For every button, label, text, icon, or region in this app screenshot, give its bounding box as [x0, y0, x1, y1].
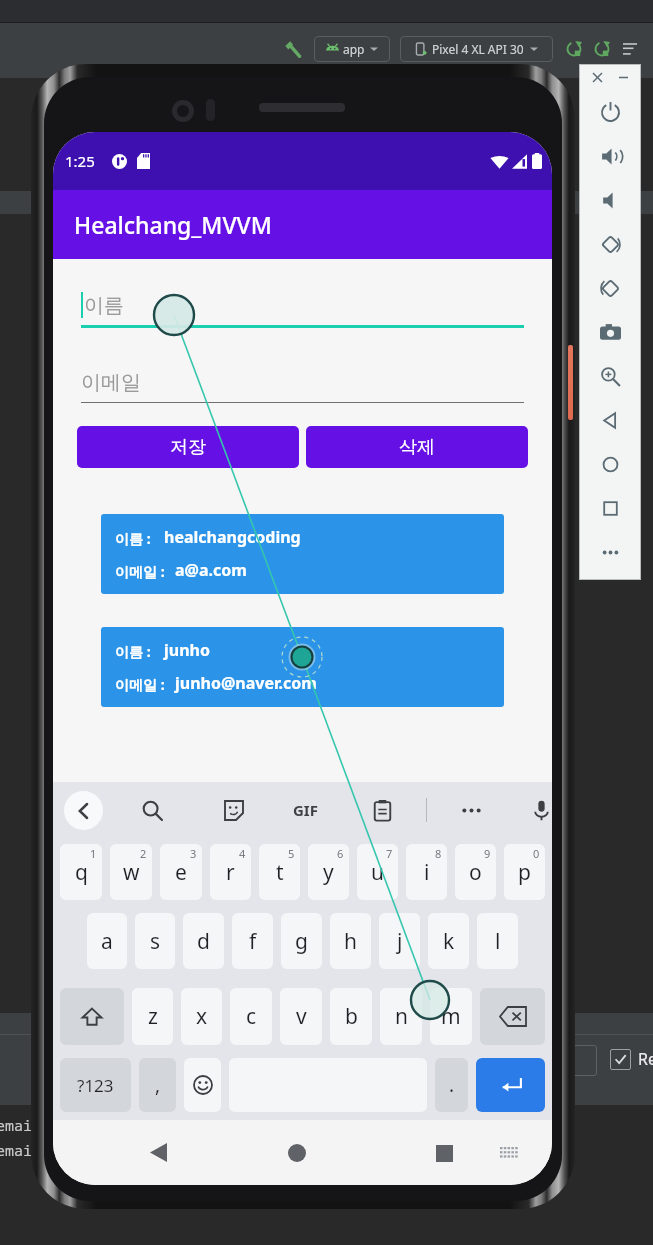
staticText: h — [344, 927, 357, 956]
staticText: , — [155, 1072, 161, 1098]
button[interactable]: 이름 : — [101, 627, 504, 707]
button[interactable]: More — [619, 38, 641, 60]
button[interactable]: Emoji — [184, 1058, 221, 1112]
staticText: 8 — [435, 846, 442, 861]
button[interactable]: x — [181, 988, 222, 1045]
staticText: 1:25 — [65, 151, 95, 171]
button[interactable]: Rotate left — [588, 222, 632, 266]
button[interactable]: Zoom — [588, 354, 632, 398]
staticText: 9 — [484, 846, 491, 861]
staticText: ?123 — [77, 1074, 114, 1097]
button[interactable]: g — [281, 913, 322, 969]
button[interactable]: Home — [588, 442, 632, 486]
button[interactable]: Volume up — [588, 134, 632, 178]
staticText: z — [148, 1002, 158, 1031]
staticText: . — [449, 1072, 455, 1098]
button[interactable]: Screenshot — [588, 310, 632, 354]
staticText: t — [276, 858, 284, 887]
button[interactable]: Stickers — [218, 795, 248, 825]
button[interactable]: Volume down — [588, 178, 632, 222]
staticText: app — [343, 41, 365, 57]
button[interactable]: Pixel 4 XL API 30 — [400, 36, 553, 62]
staticText: q — [75, 858, 88, 887]
staticText: 1 — [90, 846, 97, 861]
staticText: m — [441, 1002, 461, 1031]
button[interactable]: e — [160, 844, 202, 900]
button[interactable]: b — [330, 988, 372, 1045]
staticText: o — [469, 858, 482, 887]
button[interactable]: c — [230, 988, 272, 1045]
staticText: 삭제 — [399, 436, 435, 459]
staticText: b — [345, 1002, 358, 1031]
button[interactable]: u — [357, 844, 398, 900]
staticText: junho — [164, 639, 210, 661]
button[interactable]: d — [183, 913, 224, 969]
button[interactable]: . — [435, 1058, 468, 1112]
button[interactable]: Rotate right — [588, 266, 632, 310]
button[interactable]: Shift — [60, 988, 124, 1045]
button[interactable]: 삭제 — [306, 426, 528, 468]
button[interactable]: o — [455, 844, 496, 900]
button[interactable]: m — [430, 988, 472, 1045]
staticText: y — [323, 858, 334, 887]
button[interactable]: Switch keyboard — [492, 1136, 526, 1170]
button[interactable]: s — [135, 913, 175, 969]
button[interactable]: h — [330, 913, 371, 969]
staticText: email — [0, 1115, 42, 1135]
button[interactable]: Voice input — [530, 795, 552, 825]
button[interactable]: a — [87, 913, 127, 969]
button[interactable]: ?123 — [60, 1058, 131, 1112]
button[interactable]: app — [314, 36, 390, 62]
button[interactable]: t — [259, 844, 300, 900]
button[interactable]: v — [280, 988, 322, 1045]
button[interactable]: r — [210, 844, 251, 900]
staticText: Pixel 4 XL API 30 — [432, 41, 524, 57]
button[interactable]: Minimize — [616, 70, 630, 84]
button[interactable]: More options — [456, 795, 486, 825]
staticText: 4 — [239, 846, 246, 861]
staticText: 저장 — [170, 436, 206, 459]
button[interactable]: Back — [142, 1136, 175, 1169]
button[interactable]: Run — [563, 38, 585, 60]
button[interactable]: Debug — [591, 38, 613, 60]
button[interactable]: Overview — [588, 486, 632, 530]
staticText: d — [197, 927, 210, 956]
button[interactable]: Enter — [476, 1058, 545, 1112]
button[interactable]: Back — [588, 398, 632, 442]
button[interactable]: Build — [280, 36, 306, 62]
button[interactable]: Power — [588, 90, 632, 134]
staticText: s — [150, 927, 161, 956]
button[interactable]: Search — [137, 795, 167, 825]
staticText: email — [0, 1140, 42, 1160]
button[interactable]: w — [110, 844, 152, 900]
button[interactable]: , — [139, 1058, 176, 1112]
staticText: 0 — [533, 846, 540, 861]
button[interactable]: Clipboard — [367, 795, 397, 825]
button[interactable]: 이름 : — [101, 514, 504, 594]
button[interactable]: More — [588, 530, 632, 574]
button[interactable]: Backspace — [480, 988, 545, 1045]
button[interactable]: Back — [64, 791, 103, 830]
staticText: r — [226, 858, 235, 887]
button[interactable]: Home — [280, 1136, 314, 1170]
button[interactable]: Close — [590, 70, 604, 84]
button[interactable]: f — [232, 913, 273, 969]
button[interactable]: i — [406, 844, 447, 900]
staticText: Healchang_MVVM — [74, 209, 272, 240]
staticText: 3 — [190, 846, 197, 861]
button[interactable]: Recent apps — [427, 1136, 461, 1170]
button[interactable]: l — [477, 913, 518, 969]
button[interactable]: 저장 — [77, 426, 299, 468]
button[interactable]: k — [428, 913, 469, 969]
staticText: 이메일 : — [115, 562, 165, 581]
button[interactable]: j — [379, 913, 420, 969]
button[interactable]: p — [504, 844, 545, 900]
staticText: i — [424, 858, 430, 887]
button[interactable]: q — [60, 844, 102, 900]
button[interactable]: n — [380, 988, 422, 1045]
button[interactable]: z — [132, 988, 173, 1045]
staticText: g — [295, 927, 308, 956]
staticText: healchangcoding — [164, 526, 301, 548]
button[interactable]: y — [308, 844, 349, 900]
